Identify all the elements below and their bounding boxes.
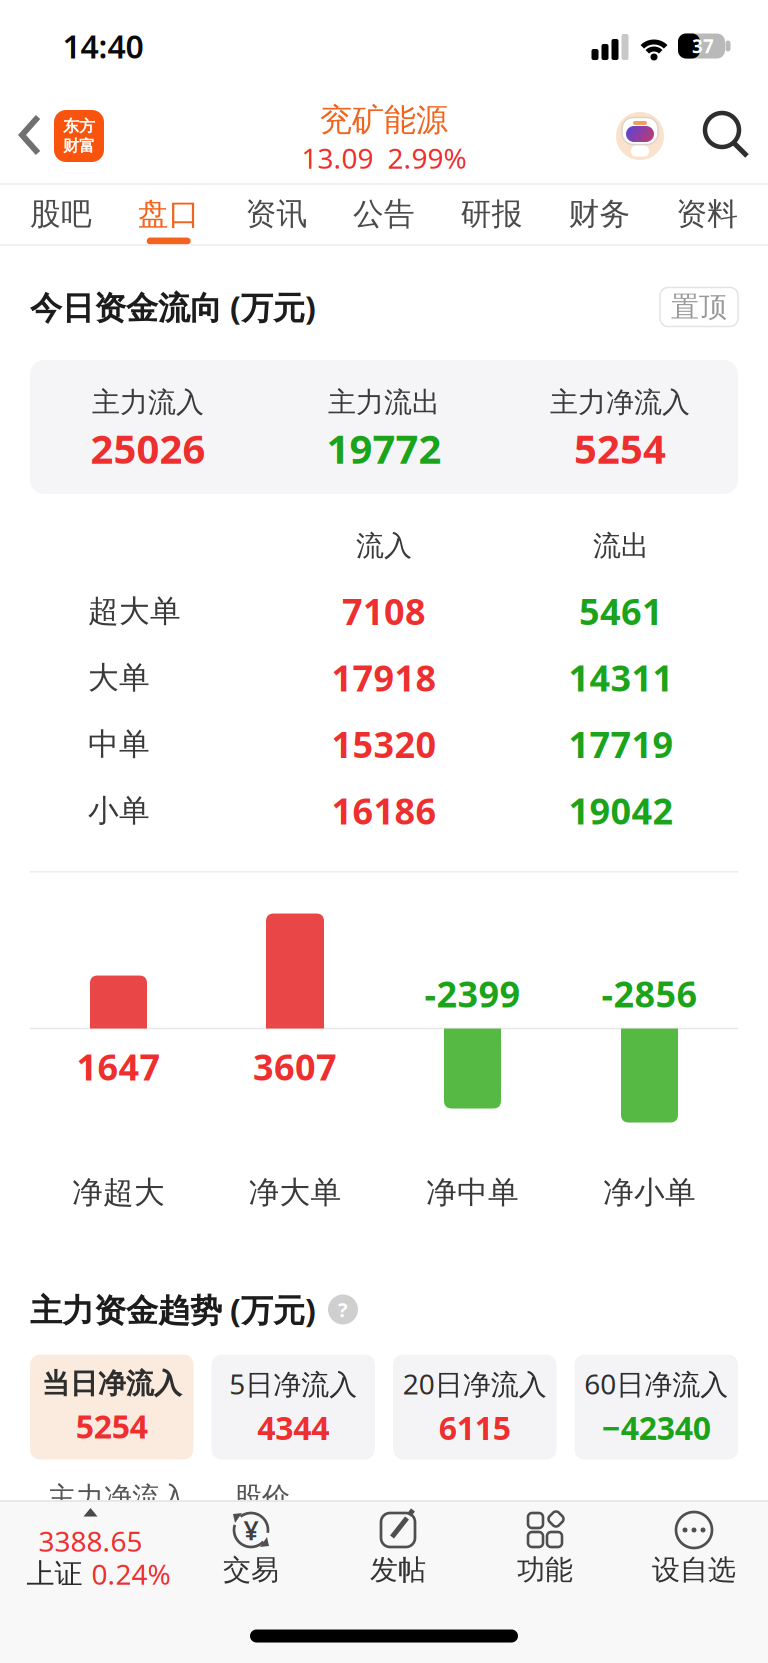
staticText: 小单 — [88, 792, 150, 830]
button[interactable]: 当日净流入 — [30, 1354, 193, 1459]
button[interactable]: 发帖 — [333, 1501, 463, 1593]
staticText: 置顶 — [671, 290, 727, 324]
staticText: 交易 — [223, 1553, 279, 1587]
staticText: 财务 — [568, 195, 630, 233]
staticText: 主力资金趋势 (万元) — [30, 1288, 316, 1331]
button[interactable]: 智能助手 — [616, 112, 664, 160]
button[interactable]: Search — [703, 111, 751, 159]
staticText: 净中单 — [426, 1174, 519, 1211]
button[interactable]: ¥ — [186, 1501, 316, 1593]
staticText: 主力净流入 — [550, 385, 690, 420]
staticText: 资料 — [676, 195, 738, 233]
staticText: -2856 — [601, 970, 697, 1017]
staticText: 15320 — [331, 720, 436, 768]
staticText: ? — [338, 1296, 348, 1323]
staticText: 19772 — [326, 422, 441, 475]
staticText: 3607 — [253, 1043, 337, 1090]
button[interactable]: 盘口 — [138, 195, 200, 233]
staticText: 19042 — [568, 787, 673, 834]
staticText: 20日净流入 — [403, 1365, 547, 1402]
staticText: 净超大 — [72, 1174, 165, 1211]
staticText: 功能 — [517, 1553, 573, 1587]
button[interactable]: 功能 — [480, 1501, 610, 1593]
staticText: 当日净流入 — [42, 1367, 182, 1401]
staticText: 研报 — [461, 195, 523, 233]
staticText: 东方 — [63, 116, 95, 136]
staticText: 财富 — [63, 136, 95, 156]
button[interactable]: 财务 — [568, 195, 630, 233]
staticText: 资讯 — [245, 195, 307, 233]
staticText: 股价 — [234, 1480, 290, 1515]
staticText: 17719 — [568, 720, 673, 768]
button[interactable]: 置顶 — [660, 287, 738, 326]
staticText: −42340 — [602, 1406, 711, 1449]
staticText: 25026 — [90, 422, 205, 475]
staticText: 3388.65 — [38, 1522, 142, 1560]
staticText: 发帖 — [370, 1553, 426, 1587]
staticText: 大单 — [88, 659, 150, 697]
staticText: 净大单 — [248, 1174, 341, 1211]
staticText: -2399 — [424, 970, 520, 1017]
staticText: 流出 — [593, 529, 649, 563]
staticText: 4344 — [257, 1406, 329, 1449]
staticText: 股吧 — [30, 195, 92, 233]
staticText: 流入 — [356, 529, 412, 563]
staticText: 主力净流入 — [48, 1480, 188, 1515]
staticText: 5254 — [76, 1405, 148, 1447]
staticText: 6115 — [439, 1406, 511, 1449]
button[interactable]: 研报 — [461, 195, 523, 233]
button[interactable]: 设自选 — [629, 1501, 759, 1593]
staticText: 超大单 — [88, 592, 181, 630]
button[interactable]: 东方财富 — [54, 110, 104, 162]
staticText: 净小单 — [603, 1174, 696, 1211]
staticText: 兖矿能源 — [320, 100, 448, 140]
button[interactable]: 公告 — [353, 195, 415, 233]
staticText: ¥ — [243, 1512, 258, 1548]
button[interactable]: 帮助 — [328, 1294, 358, 1324]
staticText: 盘口 — [138, 195, 200, 233]
staticText: 17918 — [331, 654, 436, 701]
staticText: 公告 — [353, 195, 415, 233]
staticText: 今日资金流向 (万元) — [30, 286, 316, 328]
staticText: 14311 — [568, 654, 673, 701]
staticText: 主力流出 — [328, 385, 440, 420]
button[interactable]: 5日净流入 — [211, 1354, 375, 1459]
button[interactable]: Back — [20, 113, 42, 157]
staticText: 5254 — [574, 422, 666, 475]
staticText: 60日净流入 — [584, 1365, 728, 1402]
staticText: 5461 — [579, 587, 663, 635]
staticText: 0.24% — [91, 1555, 170, 1593]
staticText: 1647 — [76, 1043, 160, 1090]
button[interactable]: 60日净流入 — [574, 1354, 738, 1459]
staticText: 7108 — [342, 587, 426, 635]
button[interactable]: 20日净流入 — [393, 1354, 556, 1459]
staticText: 37 — [692, 34, 714, 58]
staticText: 上证 — [26, 1557, 82, 1591]
button[interactable]: 资料 — [676, 195, 738, 233]
staticText: 中单 — [88, 725, 150, 763]
staticText: 13.09 2.99% — [301, 139, 466, 177]
button[interactable]: 资讯 — [245, 195, 307, 233]
staticText: 14:40 — [62, 25, 143, 67]
staticText: 主力流入 — [92, 385, 204, 420]
staticText: 设自选 — [652, 1553, 736, 1587]
button[interactable]: 股吧 — [30, 195, 92, 233]
staticText: 16186 — [331, 787, 436, 834]
staticText: 5日净流入 — [229, 1365, 357, 1402]
button[interactable]: 3388.65 — [0, 1501, 196, 1593]
